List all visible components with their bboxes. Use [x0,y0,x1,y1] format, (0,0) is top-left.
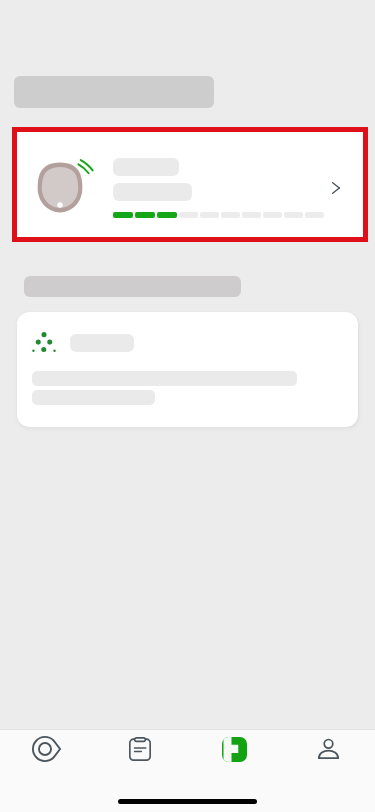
button[interactable]: Open [17,132,363,237]
button[interactable]: Tasks [93,730,187,768]
button[interactable] [17,312,358,427]
button[interactable]: Profile [281,730,375,768]
button[interactable]: Explore [0,730,93,768]
other: Open [332,182,340,194]
button[interactable]: Flag [187,730,281,768]
